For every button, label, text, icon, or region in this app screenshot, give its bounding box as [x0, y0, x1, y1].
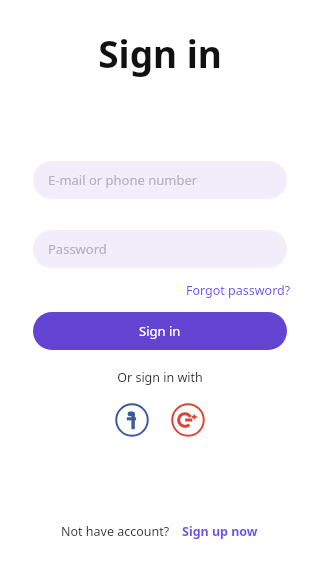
staticText: E-mail or phone number — [48, 171, 198, 189]
button[interactable]: Password — [33, 230, 287, 268]
staticText: Sign in — [0, 28, 320, 78]
staticText: Or sign in with — [0, 369, 320, 386]
button[interactable]: Forgot password? — [184, 280, 293, 301]
staticText: Forgot password? — [186, 282, 291, 299]
button[interactable]: Sign in with Google Plus — [170, 402, 206, 438]
staticText: Password — [48, 240, 107, 258]
staticText: Sign up now — [182, 523, 258, 540]
button[interactable]: Sign in — [33, 312, 287, 350]
staticText: Sign in — [139, 322, 181, 340]
button[interactable]: E-mail or phone number — [33, 161, 287, 199]
button[interactable]: Sign in with Facebook — [114, 402, 150, 438]
staticText: Not have account? — [61, 523, 170, 540]
button[interactable]: Sign up now — [181, 521, 259, 542]
